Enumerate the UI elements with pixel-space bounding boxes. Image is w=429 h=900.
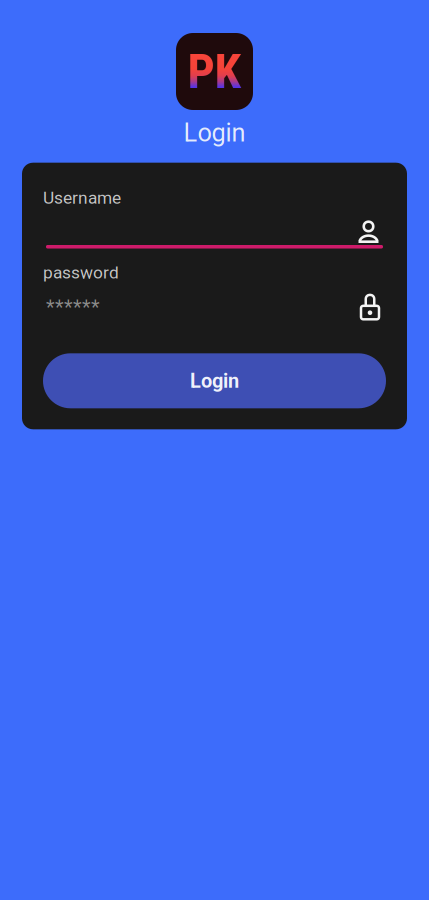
staticText: ****** [46, 296, 100, 319]
staticText: Login [190, 369, 239, 392]
button[interactable]: Login [43, 353, 386, 408]
staticText: Login [183, 118, 245, 148]
staticText: password [43, 262, 119, 283]
staticText: Username [43, 188, 121, 208]
